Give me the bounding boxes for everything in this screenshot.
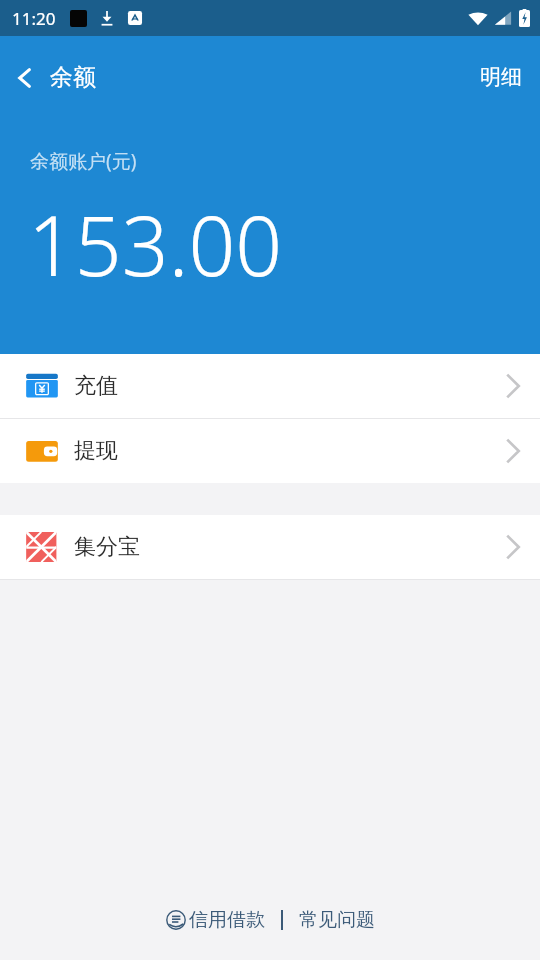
staticText: 余额账户(元) (30, 148, 137, 174)
staticText: 常见问题 (299, 908, 375, 932)
staticText: 11:20 (12, 7, 56, 30)
button[interactable]: 充值 (0, 354, 540, 418)
staticText: 集分宝 (74, 533, 140, 561)
staticText: 提现 (74, 437, 118, 465)
other: Back (14, 67, 36, 89)
staticText: 明细 (480, 64, 522, 90)
button[interactable]: Back (0, 55, 106, 100)
button[interactable]: 明细 (462, 52, 540, 102)
staticText: 余额 (50, 63, 96, 92)
button[interactable]: 集分宝 (0, 515, 540, 579)
button[interactable]: 提现 (0, 419, 540, 483)
staticText: 信用借款 (189, 908, 265, 932)
staticText: 153.00 (28, 188, 283, 300)
button[interactable]: 信用借款 (160, 902, 271, 938)
button[interactable]: 常见问题 (293, 902, 381, 938)
staticText: 充值 (74, 372, 118, 400)
